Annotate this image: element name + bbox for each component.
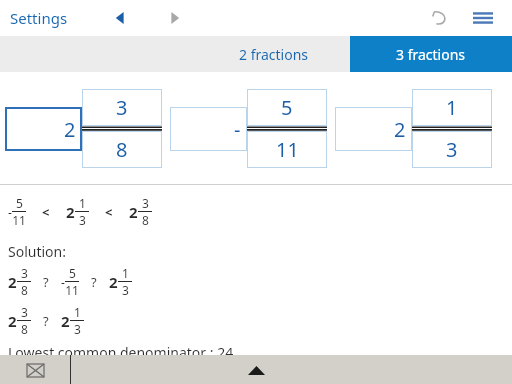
staticText: 2 <box>129 202 138 222</box>
staticText: 3 <box>122 282 129 298</box>
staticText: 11 <box>65 282 79 298</box>
button[interactable]: Mail <box>18 358 52 382</box>
staticText: Lowest common denominator : 24 <box>8 343 234 355</box>
staticText: Solution: <box>8 242 66 261</box>
staticText: 2 <box>109 272 118 292</box>
staticText: 11 <box>276 136 299 163</box>
staticText: 1 <box>74 304 81 320</box>
staticText: 5 <box>16 195 23 211</box>
button[interactable]: 2 <box>335 107 412 151</box>
staticText: 1 <box>446 94 458 121</box>
button[interactable]: Settings <box>0 2 78 34</box>
staticText: 11 <box>12 212 26 228</box>
button[interactable]: 3 <box>412 131 492 168</box>
staticText: ? <box>43 312 49 330</box>
staticText: - <box>61 274 65 290</box>
staticText: 2 <box>61 311 70 331</box>
staticText: 5 <box>69 265 76 281</box>
staticText: 3 <box>116 94 128 121</box>
staticText: 3 <box>446 136 458 163</box>
staticText: < <box>105 203 113 221</box>
staticText: 2 fractions <box>239 45 309 64</box>
staticText: 2 <box>8 272 17 292</box>
button[interactable]: 2 <box>5 107 82 151</box>
staticText: 3 <box>79 212 86 228</box>
staticText: ? <box>43 273 49 291</box>
staticText: 5 <box>281 94 293 121</box>
staticText: 8 <box>21 282 28 298</box>
button[interactable]: 2 fractions <box>198 36 350 72</box>
button[interactable]: 1 <box>412 89 492 126</box>
staticText: - <box>234 116 241 143</box>
staticText: ? <box>91 273 97 291</box>
staticText: - <box>8 204 12 220</box>
button[interactable]: Expand <box>236 357 276 383</box>
staticText: Settings <box>10 8 68 28</box>
button[interactable]: - <box>170 107 247 151</box>
staticText: 8 <box>142 212 149 228</box>
staticText: 2 <box>66 202 75 222</box>
staticText: 3 <box>142 195 149 211</box>
button[interactable]: 8 <box>82 131 162 168</box>
staticText: < <box>42 203 50 221</box>
button[interactable]: 3 fractions <box>350 36 512 72</box>
staticText: 1 <box>122 265 129 281</box>
staticText: 2 <box>8 311 17 331</box>
button[interactable]: 11 <box>247 131 327 168</box>
staticText: 1 <box>79 195 86 211</box>
button[interactable]: Undo <box>424 2 456 34</box>
staticText: 8 <box>21 321 28 337</box>
staticText: 3 <box>21 265 28 281</box>
staticText: 3 <box>74 321 81 337</box>
staticText: 3 fractions <box>396 45 466 64</box>
button[interactable]: 3 <box>82 89 162 126</box>
staticText: 3 <box>21 304 28 320</box>
button[interactable]: Menu <box>466 1 500 35</box>
staticText: 2 <box>64 116 76 143</box>
button[interactable]: Next <box>160 3 190 33</box>
staticText: 8 <box>116 136 128 163</box>
button[interactable]: Previous <box>105 3 135 33</box>
button[interactable]: 5 <box>247 89 327 126</box>
staticText: 2 <box>394 116 406 143</box>
